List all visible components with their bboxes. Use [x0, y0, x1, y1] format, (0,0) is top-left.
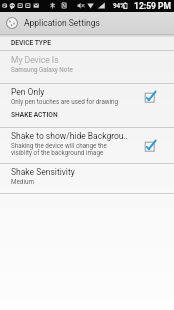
staticText: Application Settings — [24, 18, 100, 28]
staticText: My Device Is — [11, 55, 59, 65]
button[interactable]: Toggle Shake to show/hide Backgrou.. — [142, 139, 158, 155]
staticText: 12:59 PM — [134, 1, 171, 11]
button[interactable]: Shake Sensitivity — [0, 164, 174, 192]
staticText: Shake Sensitivity — [11, 167, 75, 177]
button[interactable]: Shake to show/hide Backgrou.. — [0, 128, 174, 162]
staticText: Shake to show/hide Backgrou.. — [11, 131, 128, 141]
staticText: Shaking the device will change the visib… — [11, 142, 107, 156]
staticText: Samsung Galaxy Note — [11, 66, 73, 73]
staticText: Medium — [11, 178, 34, 185]
button[interactable]: Pen Only — [0, 84, 174, 111]
staticText: SHAKE ACTION — [11, 111, 58, 119]
button[interactable]: Application Settings — [0, 12, 174, 34]
staticText: Pen Only — [11, 87, 45, 97]
button[interactable]: My Device Is — [0, 52, 174, 83]
staticText: Only pen touches are used for drawing — [11, 98, 119, 105]
staticText: 94% — [113, 2, 125, 9]
staticText: DEVICE TYPE — [11, 39, 51, 47]
button[interactable]: Toggle Pen Only — [142, 90, 158, 106]
